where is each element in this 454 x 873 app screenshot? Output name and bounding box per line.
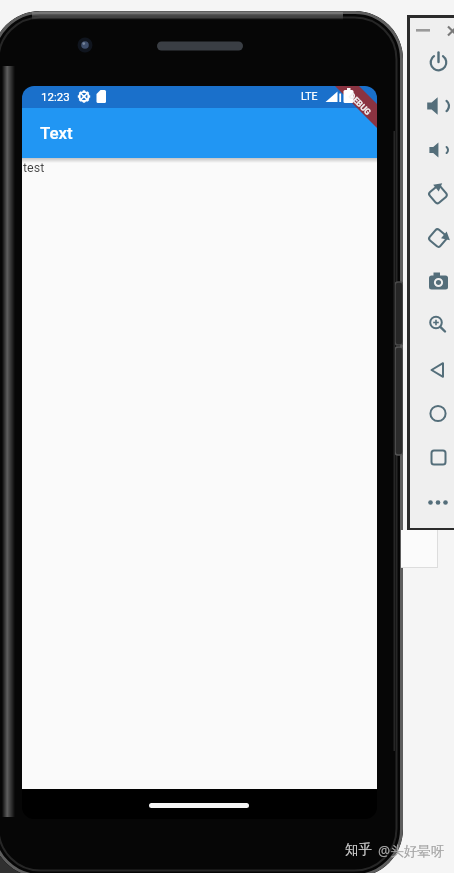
staticText: DEBUG [347, 91, 373, 117]
button[interactable] [420, 441, 454, 475]
staticText: LTE [301, 90, 318, 102]
staticText: @头好晕呀 [378, 842, 445, 860]
button[interactable] [420, 177, 454, 211]
button[interactable] [420, 353, 454, 387]
button[interactable] [420, 308, 454, 342]
button[interactable] [420, 265, 454, 299]
button[interactable] [414, 22, 432, 38]
button[interactable] [420, 89, 454, 123]
staticText: Text [40, 123, 73, 143]
button[interactable] [420, 46, 454, 80]
staticText: 知乎 [345, 841, 372, 858]
staticText: test [23, 160, 45, 175]
button[interactable] [420, 221, 454, 255]
button[interactable] [420, 486, 454, 520]
button[interactable] [445, 22, 454, 38]
button[interactable] [420, 397, 454, 431]
button[interactable] [420, 133, 454, 167]
staticText: 12:23 [41, 90, 70, 103]
